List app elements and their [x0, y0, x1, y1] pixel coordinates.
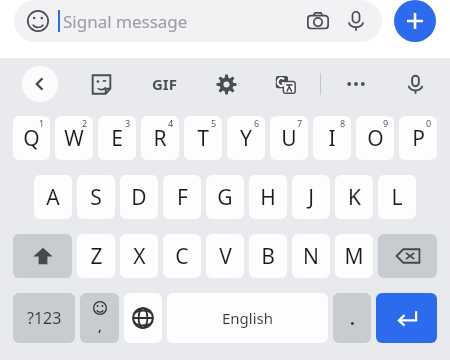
staticText: 3	[125, 117, 131, 129]
button[interactable]: S	[77, 175, 115, 219]
staticText: O	[367, 124, 384, 153]
staticText: English	[222, 308, 274, 328]
staticText: S	[90, 183, 102, 212]
button[interactable]: F	[163, 175, 201, 219]
button[interactable]: .	[333, 293, 371, 343]
staticText: K	[348, 183, 361, 212]
button[interactable]: Change language	[124, 293, 162, 343]
button[interactable]: Send	[394, 0, 436, 42]
staticText: P	[412, 124, 425, 153]
staticText: 9	[383, 117, 389, 129]
staticText: E	[111, 124, 123, 153]
staticText: ?123	[27, 307, 62, 329]
button[interactable]: Shift	[13, 234, 72, 278]
button[interactable]: Back	[22, 66, 58, 102]
staticText: I	[328, 124, 336, 153]
button[interactable]: B	[249, 234, 287, 278]
button[interactable]: Settings	[209, 67, 243, 101]
button[interactable]: O	[356, 116, 394, 160]
staticText: N	[303, 242, 319, 271]
button[interactable]: P	[399, 116, 437, 160]
staticText: GIF	[152, 74, 177, 94]
button[interactable]: G	[206, 175, 244, 219]
staticText: M	[344, 242, 364, 271]
staticText: 6	[254, 117, 260, 129]
staticText: X	[133, 242, 146, 271]
staticText: C	[175, 242, 189, 271]
staticText: T	[197, 124, 209, 153]
button[interactable]: A	[34, 175, 72, 219]
button[interactable]: K	[335, 175, 373, 219]
button[interactable]: Backspace	[378, 234, 437, 278]
button[interactable]: M	[335, 234, 373, 278]
button[interactable]: D	[120, 175, 158, 219]
staticText: 0	[426, 117, 432, 129]
staticText: 4	[168, 117, 174, 129]
button[interactable]: V	[206, 234, 244, 278]
button[interactable]: T	[184, 116, 222, 160]
staticText: .	[350, 307, 355, 330]
button[interactable]: Emoji	[14, 0, 382, 42]
button[interactable]: E	[98, 116, 136, 160]
staticText: B	[261, 242, 275, 271]
staticText: A	[46, 183, 60, 212]
button[interactable]: Voice message	[342, 7, 370, 35]
button[interactable]: English	[167, 293, 328, 343]
staticText: W	[64, 124, 84, 153]
button[interactable]: I	[313, 116, 351, 160]
staticText: 8	[340, 117, 346, 129]
button[interactable]: C	[163, 234, 201, 278]
button[interactable]: W	[55, 116, 93, 160]
button[interactable]: Z	[77, 234, 115, 278]
button[interactable]: X	[120, 234, 158, 278]
button[interactable]: Stickers	[84, 67, 118, 101]
staticText: R	[153, 124, 167, 153]
button[interactable]: Enter	[376, 293, 437, 343]
button[interactable]: H	[249, 175, 287, 219]
button[interactable]: N	[292, 234, 330, 278]
button[interactable]: More options	[339, 67, 373, 101]
button[interactable]: J	[292, 175, 330, 219]
button[interactable]: ?123	[13, 293, 75, 343]
staticText: V	[219, 242, 232, 271]
button[interactable]: R	[141, 116, 179, 160]
staticText: D	[131, 183, 147, 212]
staticText: Y	[240, 124, 252, 153]
staticText: U	[281, 124, 297, 153]
staticText: 5	[211, 117, 217, 129]
staticText: Signal message	[63, 10, 188, 33]
staticText: G	[217, 183, 233, 212]
staticText: ,	[98, 317, 102, 335]
button[interactable]: Camera	[304, 7, 332, 35]
button[interactable]: GIF	[144, 64, 184, 104]
button[interactable]: Y	[227, 116, 265, 160]
button[interactable]: Emoji and comma	[80, 293, 119, 343]
button[interactable]: L	[378, 175, 416, 219]
staticText: 1	[39, 117, 45, 129]
staticText: J	[308, 183, 314, 212]
staticText: H	[260, 183, 276, 212]
button[interactable]: Voice input	[398, 67, 432, 101]
staticText: Q	[23, 124, 40, 153]
staticText: F	[177, 183, 188, 212]
button[interactable]: Translate	[268, 67, 302, 101]
other: Emoji	[26, 9, 50, 33]
staticText: 7	[297, 117, 303, 129]
staticText: L	[391, 183, 403, 212]
button[interactable]: U	[270, 116, 308, 160]
staticText: Z	[90, 242, 103, 271]
button[interactable]: Q	[13, 116, 50, 160]
staticText: 2	[82, 117, 88, 129]
